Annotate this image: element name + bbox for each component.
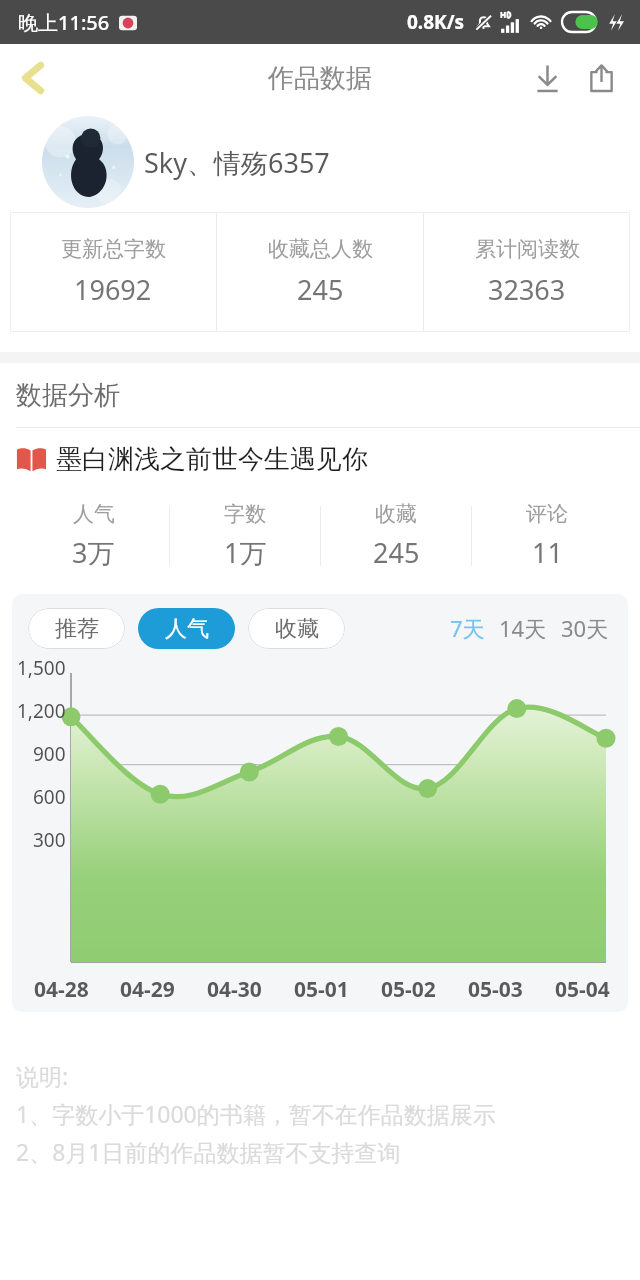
staticText: 30天	[561, 613, 609, 643]
staticText: 7天	[450, 613, 485, 643]
staticText: 0.8K/s	[407, 9, 465, 35]
staticText: 05-03	[468, 975, 523, 1004]
staticText: 数据分析	[16, 379, 120, 412]
button[interactable]: 收藏总人数	[217, 212, 423, 332]
staticText: 推荐	[55, 615, 99, 643]
staticText: 1,500	[17, 655, 66, 681]
staticText: 04-29	[120, 975, 175, 1004]
staticText: 300	[33, 827, 66, 853]
button[interactable]: 字数	[170, 501, 320, 571]
button[interactable]: Download	[520, 51, 574, 105]
staticText: 04-28	[34, 975, 89, 1004]
staticText: 19692	[74, 271, 152, 308]
button[interactable]: 30天	[558, 607, 612, 649]
staticText: 收藏总人数	[268, 236, 373, 262]
staticText: 2、8月1日前的作品数据暂不支持查询	[16, 1136, 401, 1167]
staticText: 作品数据	[268, 62, 372, 95]
staticText: 字数	[224, 501, 266, 527]
staticText: 3万	[72, 534, 115, 571]
staticText: 说明:	[16, 1060, 69, 1091]
button[interactable]: 7天	[447, 607, 488, 649]
button[interactable]: Share	[574, 51, 628, 105]
staticText: 900	[33, 741, 66, 767]
staticText: 32363	[488, 271, 566, 308]
button[interactable]: 评论	[472, 501, 622, 571]
button[interactable]: 收藏	[248, 608, 345, 649]
staticText: 600	[33, 784, 66, 810]
staticText: 墨白渊浅之前世今生遇见你	[56, 443, 368, 476]
staticText: 05-02	[381, 975, 436, 1004]
button[interactable]: 14天	[496, 607, 550, 649]
staticText: 245	[297, 271, 344, 308]
staticText: 评论	[526, 501, 568, 527]
staticText: 05-01	[294, 975, 349, 1004]
staticText: 1、字数小于1000的书籍，暂不在作品数据展示	[16, 1098, 496, 1129]
button[interactable]: 人气	[18, 501, 169, 571]
staticText: 1,200	[17, 698, 66, 724]
button[interactable]: 累计阅读数	[424, 212, 630, 332]
staticText: 收藏	[275, 615, 319, 643]
staticText: Sky、情殇6357	[144, 144, 330, 181]
staticText: 收藏	[375, 501, 417, 527]
button[interactable]: 推荐	[28, 608, 125, 649]
staticText: 05-04	[555, 975, 610, 1004]
staticText: 14天	[499, 613, 547, 643]
button[interactable]: 收藏	[321, 501, 471, 571]
button[interactable]: 墨白渊浅之前世今生遇见你	[16, 428, 640, 490]
staticText: 更新总字数	[61, 236, 166, 262]
staticText: 245	[373, 534, 420, 571]
staticText: 人气	[73, 501, 115, 527]
staticText: 晚上11:56	[18, 9, 110, 36]
staticText: 人气	[165, 615, 209, 643]
staticText: 04-30	[207, 975, 262, 1004]
button[interactable]: 更新总字数	[10, 212, 216, 332]
staticText: 累计阅读数	[475, 236, 580, 262]
staticText: 11	[532, 534, 563, 571]
button[interactable]: Back	[4, 49, 62, 107]
button[interactable]: 人气	[138, 608, 235, 649]
staticText: 1万	[224, 534, 267, 571]
